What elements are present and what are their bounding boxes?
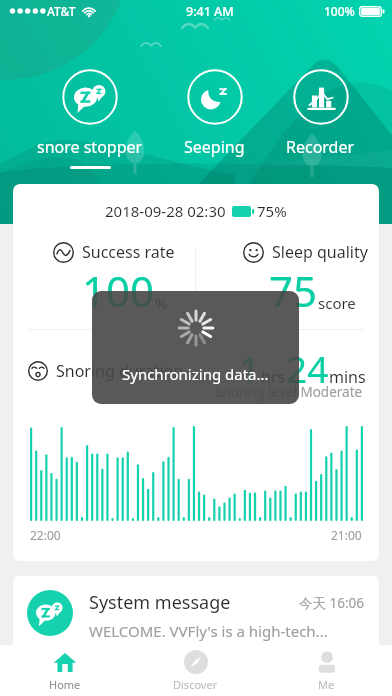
- staticText: 2018-09-28 02:30: [105, 201, 226, 221]
- button[interactable]: System message: [13, 576, 379, 654]
- button[interactable]: Seeping: [180, 69, 249, 166]
- button[interactable]: Me: [261, 645, 392, 696]
- staticText: Recorder: [286, 136, 355, 158]
- staticText: Sleep quality: [272, 241, 368, 263]
- staticText: Snoring level Moderate: [215, 383, 363, 401]
- staticText: Discover: [173, 677, 218, 692]
- staticText: 22:00: [30, 527, 61, 543]
- staticText: WELCOME. VVFly's is a high-tech...: [89, 621, 328, 641]
- button[interactable]: Home: [0, 645, 130, 696]
- button[interactable]: Discover: [130, 645, 261, 696]
- staticText: Success rate: [82, 241, 175, 263]
- staticText: hrs: [261, 366, 286, 388]
- staticText: 9:41 AM: [186, 3, 234, 20]
- staticText: Home: [49, 677, 81, 692]
- button[interactable]: Recorder: [282, 69, 359, 166]
- staticText: Me: [318, 677, 335, 692]
- staticText: 今天 16:06: [299, 594, 365, 612]
- staticText: 100: [82, 262, 155, 319]
- staticText: 21:00: [331, 527, 362, 543]
- staticText: 24: [286, 343, 329, 393]
- staticText: 75: [269, 262, 318, 319]
- staticText: 100%: [324, 3, 355, 19]
- staticText: Synchronizing data...: [122, 364, 269, 384]
- staticText: 75%: [257, 201, 287, 221]
- staticText: Snoring duration: [56, 360, 184, 382]
- button[interactable]: snore stopper: [33, 69, 147, 169]
- staticText: AT&T: [47, 3, 76, 19]
- staticText: snore stopper: [37, 136, 143, 158]
- staticText: Seeping: [184, 136, 245, 158]
- staticText: %: [155, 293, 168, 313]
- staticText: mins: [329, 366, 366, 388]
- staticText: System message: [89, 590, 231, 615]
- staticText: 1: [239, 343, 261, 393]
- staticText: score: [318, 293, 356, 313]
